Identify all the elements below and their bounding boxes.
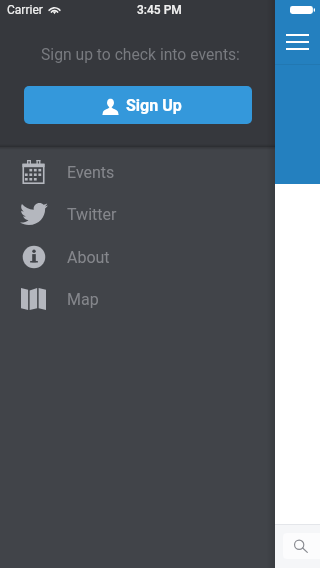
staticText: Map xyxy=(67,290,99,309)
button[interactable]: Sign Up xyxy=(24,86,252,124)
button[interactable]: Events xyxy=(0,150,275,192)
button[interactable]: Open navigation menu xyxy=(278,26,318,56)
button[interactable]: About xyxy=(0,235,275,277)
staticText: Sign up to check into events: xyxy=(41,45,240,63)
button[interactable]: Map xyxy=(0,277,275,319)
staticText: Sign Up xyxy=(126,96,182,115)
staticText: Twitter xyxy=(67,205,117,224)
staticText: 3:45 PM xyxy=(137,3,182,17)
button[interactable]: Search xyxy=(283,533,320,559)
button[interactable]: Twitter xyxy=(0,192,275,234)
staticText: Events xyxy=(67,163,115,182)
staticText: About xyxy=(67,248,110,267)
staticText: Carrier xyxy=(7,3,43,17)
other: Battery xyxy=(290,6,315,14)
